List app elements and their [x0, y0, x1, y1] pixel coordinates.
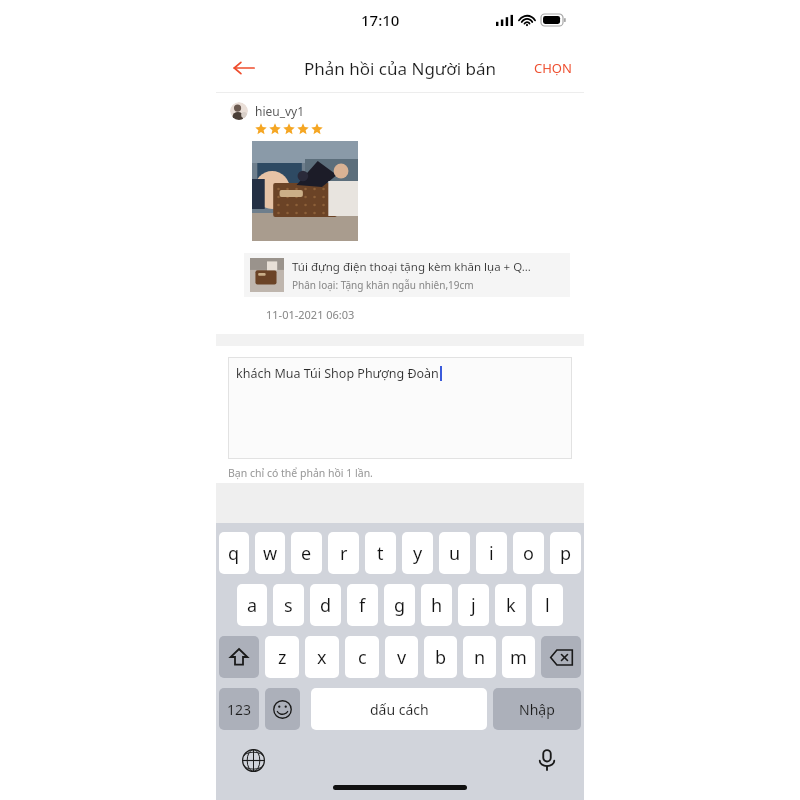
staticText: k: [506, 593, 516, 618]
button[interactable]: j: [458, 584, 489, 626]
button[interactable]: a: [237, 584, 267, 626]
staticText: 123: [227, 700, 252, 719]
button[interactable]: b: [424, 636, 457, 678]
button[interactable]: Numbers: [219, 688, 259, 730]
button[interactable]: g: [384, 584, 415, 626]
staticText: i: [489, 541, 494, 566]
staticText: b: [435, 645, 447, 670]
button[interactable]: Delete: [541, 636, 581, 678]
staticText: q: [228, 541, 240, 566]
button[interactable]: q: [219, 532, 249, 574]
button[interactable]: Shift: [219, 636, 259, 678]
staticText: j: [471, 593, 476, 618]
staticText: u: [449, 541, 461, 566]
staticText: h: [431, 593, 443, 618]
staticText: z: [278, 645, 287, 670]
button[interactable]: s: [273, 584, 304, 626]
button[interactable]: m: [502, 636, 535, 678]
button[interactable]: CHỌN: [527, 49, 579, 87]
staticText: f: [359, 593, 366, 618]
staticText: x: [317, 645, 327, 670]
button[interactable]: i: [476, 532, 507, 574]
button[interactable]: r: [328, 532, 359, 574]
staticText: Túi đựng điện thoại tặng kèm khăn lụa + …: [292, 259, 531, 275]
staticText: 11-01-2021 06:03: [266, 307, 355, 322]
staticText: CHỌN: [534, 59, 572, 77]
button[interactable]: khách Mua Túi Shop Phượng Đoàn: [228, 357, 572, 459]
button[interactable]: t: [365, 532, 396, 574]
staticText: e: [301, 541, 312, 566]
button[interactable]: n: [463, 636, 496, 678]
button[interactable]: Voice input: [530, 743, 564, 777]
staticText: d: [320, 593, 332, 618]
button[interactable]: x: [305, 636, 339, 678]
staticText: v: [397, 645, 407, 670]
button[interactable]: z: [265, 636, 299, 678]
staticText: p: [560, 541, 572, 566]
staticText: g: [394, 593, 406, 618]
staticText: 17:10: [361, 10, 400, 30]
button[interactable]: p: [550, 532, 581, 574]
staticText: r: [340, 541, 348, 566]
button[interactable]: Túi đựng điện thoại tặng kèm khăn lụa + …: [244, 253, 570, 297]
button[interactable]: u: [439, 532, 470, 574]
staticText: m: [510, 645, 527, 670]
staticText: Phân loại: Tặng khăn ngẫu nhiên,19cm: [292, 278, 474, 292]
button[interactable]: c: [345, 636, 379, 678]
staticText: t: [377, 541, 384, 566]
button[interactable]: w: [255, 532, 285, 574]
button[interactable]: e: [291, 532, 322, 574]
staticText: Bạn chỉ có thể phản hồi 1 lần.: [228, 466, 373, 480]
button[interactable]: y: [402, 532, 433, 574]
staticText: l: [545, 593, 550, 618]
button[interactable]: l: [532, 584, 563, 626]
staticText: khách Mua Túi Shop Phượng Đoàn: [236, 365, 439, 382]
button[interactable]: Back: [222, 46, 266, 90]
staticText: a: [247, 593, 258, 618]
button[interactable]: Emoji: [265, 688, 300, 730]
staticText: n: [474, 645, 486, 670]
button[interactable]: Change keyboard language: [236, 743, 270, 777]
button[interactable]: k: [495, 584, 526, 626]
staticText: c: [358, 645, 367, 670]
button[interactable]: dấu cách: [311, 688, 487, 730]
staticText: o: [523, 541, 534, 566]
staticText: dấu cách: [370, 700, 429, 719]
button[interactable]: v: [385, 636, 418, 678]
staticText: Phản hồi của Người bán: [304, 57, 497, 80]
staticText: Nhập: [519, 700, 555, 719]
staticText: s: [284, 593, 293, 618]
button[interactable]: Nhập: [493, 688, 581, 730]
button[interactable]: o: [513, 532, 544, 574]
staticText: hieu_vy1: [255, 103, 305, 119]
button[interactable]: d: [310, 584, 341, 626]
button[interactable]: h: [421, 584, 452, 626]
staticText: y: [413, 541, 423, 566]
button[interactable]: f: [347, 584, 378, 626]
staticText: w: [263, 541, 278, 566]
